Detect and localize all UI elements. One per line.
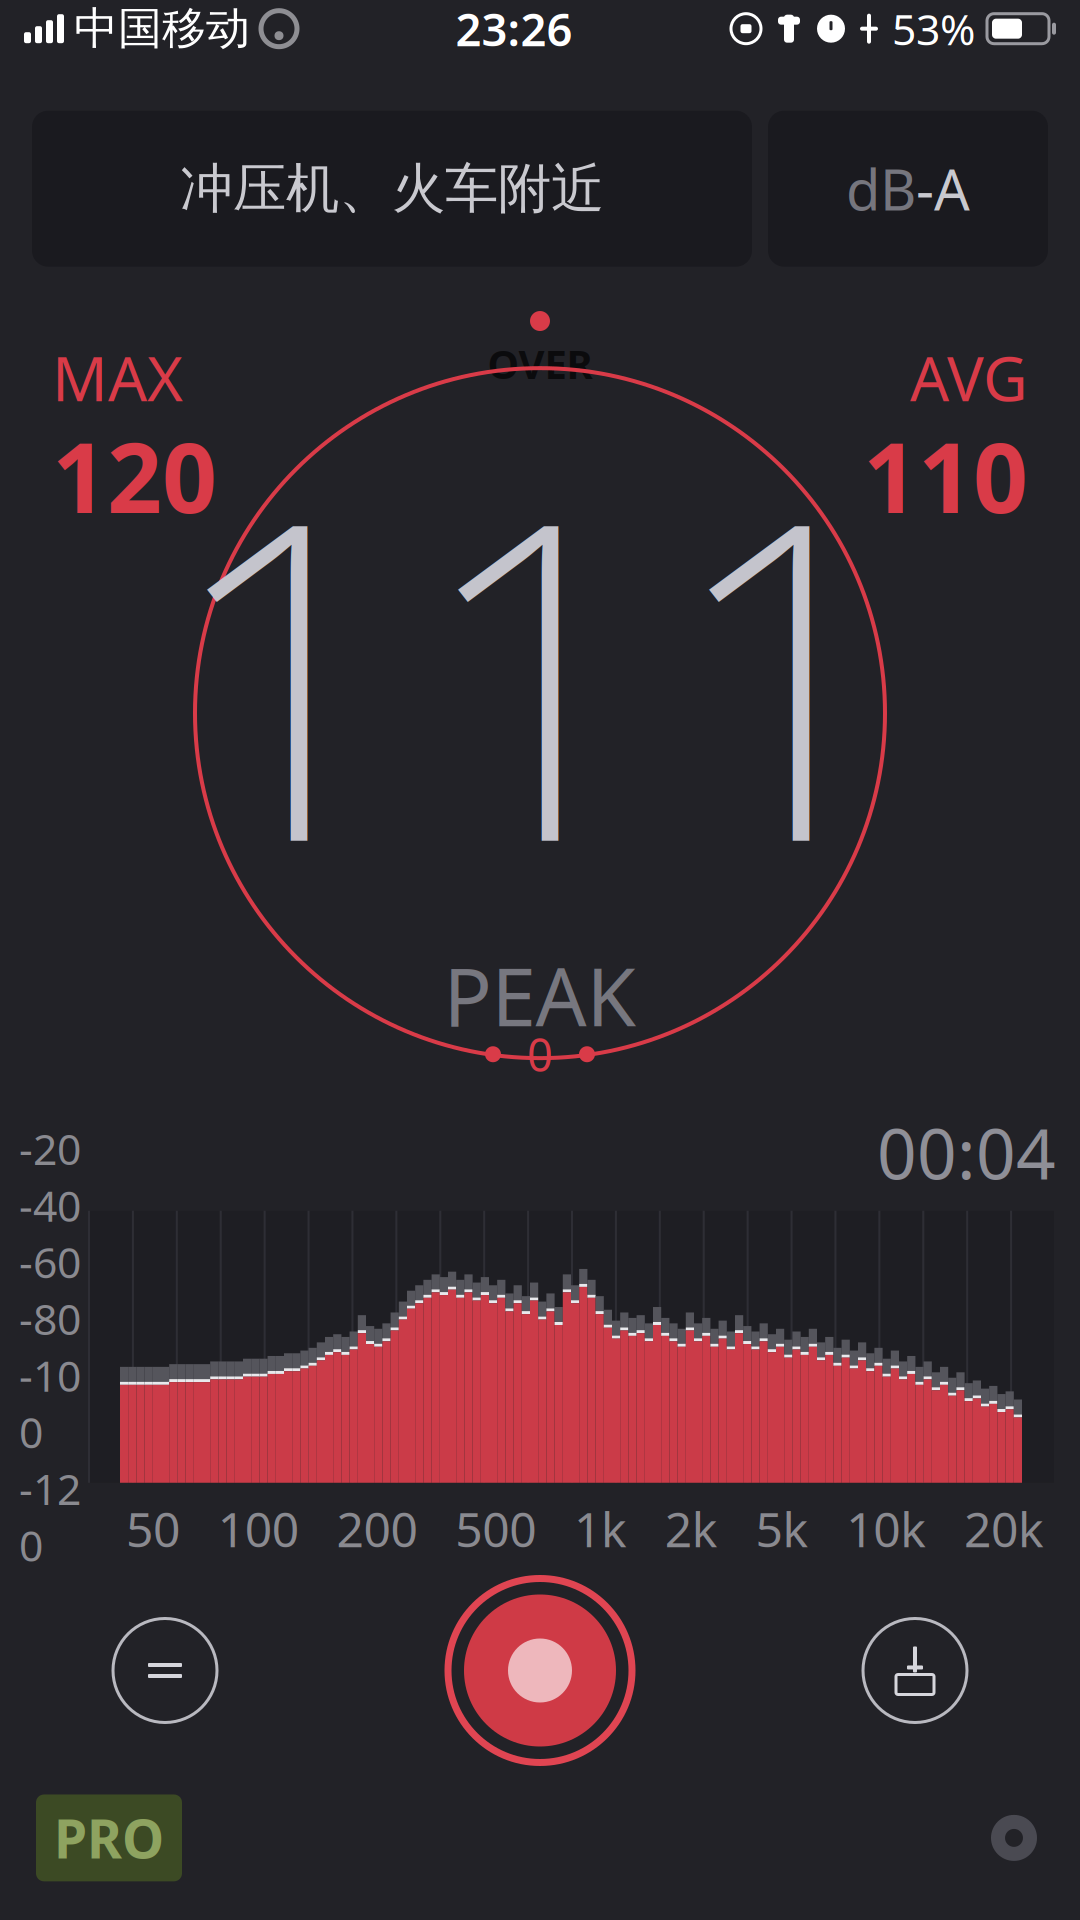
staticText: -A (916, 151, 970, 226)
staticText: dB (846, 151, 916, 226)
staticText: 5k (755, 1497, 808, 1560)
staticText: 53% (892, 0, 975, 57)
button[interactable]: Save recording (850, 1605, 980, 1735)
staticText: -100 (19, 1347, 81, 1460)
staticText: MAX (52, 337, 183, 418)
staticText: OVER (487, 337, 592, 390)
staticText: 100 (218, 1497, 299, 1560)
button[interactable]: 冲压机、火车附近 (32, 111, 752, 267)
staticText: 20k (964, 1497, 1044, 1560)
staticText: 10k (846, 1497, 926, 1560)
staticText: -20 (19, 1120, 81, 1177)
staticText: PRO (54, 1802, 164, 1873)
button[interactable]: dB (768, 111, 1048, 267)
staticText: 1k (574, 1497, 627, 1560)
staticText: 00:04 (877, 1107, 1056, 1199)
staticText: 111 (163, 378, 916, 962)
button[interactable]: Menu (100, 1605, 230, 1735)
staticText: AVG (910, 337, 1028, 418)
staticText: 冲压机、火车附近 (180, 156, 604, 221)
staticText: 120 (52, 412, 217, 540)
staticText: -40 (19, 1177, 81, 1233)
staticText: -80 (19, 1290, 81, 1347)
staticText: -120 (19, 1460, 81, 1573)
staticText: -60 (19, 1233, 81, 1290)
staticText: 500 (455, 1497, 536, 1560)
staticText: 23:26 (455, 0, 572, 59)
button[interactable]: Record (440, 1570, 640, 1770)
staticText: 0 (527, 1024, 553, 1084)
staticText: 200 (336, 1497, 417, 1560)
staticText: 110 (863, 412, 1028, 540)
button[interactable]: Settings (984, 1808, 1044, 1868)
staticText: 中国移动 (74, 2, 250, 56)
staticText: 2k (665, 1497, 718, 1560)
staticText: 50 (126, 1497, 180, 1560)
staticText: PEAK (443, 942, 636, 1048)
button[interactable]: PRO (36, 1794, 182, 1881)
